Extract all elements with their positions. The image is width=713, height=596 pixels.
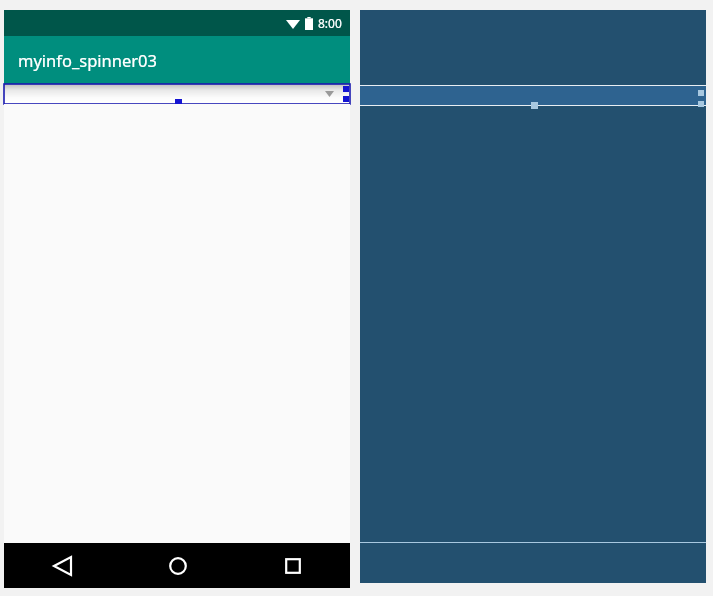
button[interactable] [4,84,350,104]
staticText: 8:00 [318,15,342,31]
button[interactable]: Recent apps [235,543,350,588]
button[interactable] [360,86,706,105]
staticText: myinfo_spinner03 [18,49,157,71]
button[interactable]: Home [120,543,235,588]
button[interactable]: Back [4,543,120,588]
